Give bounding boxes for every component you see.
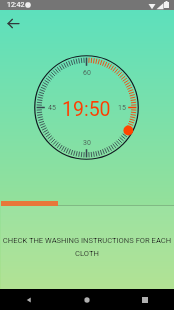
button[interactable]: Back: [2, 12, 25, 35]
staticText: 15: [118, 104, 126, 112]
button[interactable]: CHECK THE WASHING INSTRUCTIONS FOR EACH …: [1, 205, 174, 289]
staticText: 45: [48, 104, 56, 112]
staticText: 30: [83, 139, 91, 147]
button[interactable]: Home: [58, 289, 116, 310]
staticText: CHECK THE WASHING INSTRUCTIONS FOR EACH …: [1, 236, 174, 258]
button[interactable]: Back: [0, 289, 58, 310]
button[interactable]: Recent apps: [116, 289, 174, 310]
staticText: 12:42: [7, 1, 25, 9]
staticText: 60: [83, 69, 91, 77]
staticText: 19:50: [62, 98, 111, 121]
